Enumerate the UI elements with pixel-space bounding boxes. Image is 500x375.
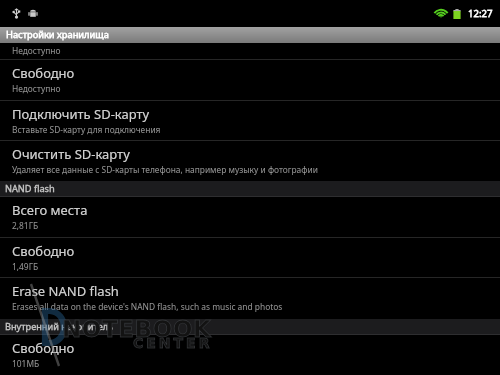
staticText: 2,81ГБ [12,220,39,231]
staticText: CENTER [133,335,213,351]
staticText: Подключить SD-карту [12,105,150,123]
other: USB connected [12,8,21,19]
button[interactable]: Очистить SD-карту [0,141,500,181]
staticText: Недоступно [12,45,61,56]
staticText: NOTEBOOK [62,316,212,343]
staticText: Свободно [12,64,75,82]
button[interactable]: Свободно [0,335,500,375]
staticText: Удаляет все данные с SD-карты телефона, … [12,164,318,175]
other: Android system [28,8,38,19]
staticText: Свободно [12,242,75,260]
button[interactable]: Erase NAND flash [0,278,500,319]
other: Wi-Fi signal [435,8,447,18]
button[interactable]: Недоступно [0,43,500,59]
staticText: Erase NAND flash [12,282,119,300]
staticText: Настройки хранилища [6,28,109,41]
staticText: Вставьте SD-карту для подключения [12,124,161,135]
staticText: Очистить SD-карту [12,145,130,163]
staticText: Всего места [12,201,88,219]
button[interactable]: Свободно [0,238,500,277]
staticText: Внутренний накопитель [5,320,114,333]
button[interactable]: Свободно [0,60,500,100]
staticText: Свободно [12,339,75,357]
staticText: CENTER [133,335,213,351]
button[interactable]: Подключить SD-карту [0,101,500,140]
staticText: Erases all data on the device's NAND fla… [12,301,283,312]
staticText: NOTEBOOK [62,316,212,343]
staticText: 1,49ГБ [12,261,39,272]
other: Battery [453,9,461,19]
staticText: 101МБ [12,358,40,369]
staticText: 12:27 [468,7,493,20]
staticText: Недоступно [12,83,61,94]
button[interactable]: Всего места [0,197,500,237]
staticText: NAND flash [5,182,55,195]
